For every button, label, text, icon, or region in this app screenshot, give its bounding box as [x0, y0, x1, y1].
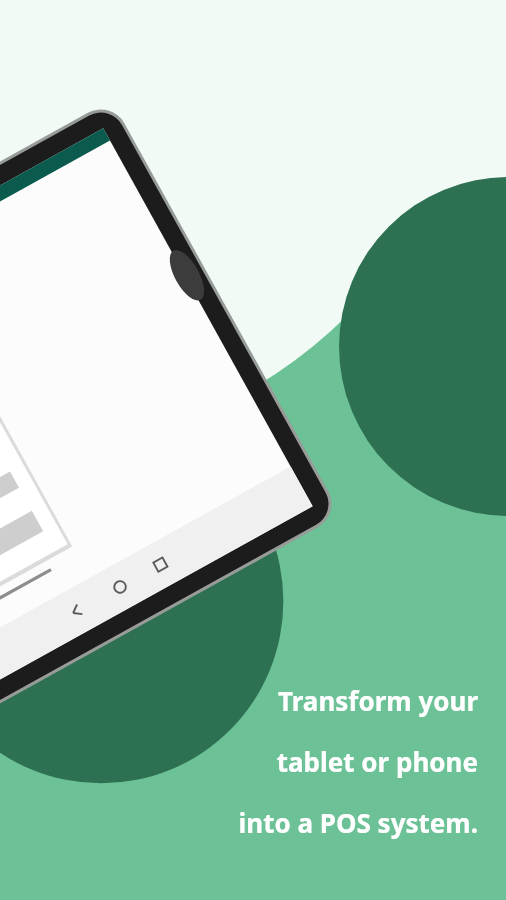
- staticText: tablet or phone: [276, 744, 478, 779]
- staticText: Transform your: [278, 683, 478, 718]
- button[interactable]: Transform your: [238, 683, 478, 840]
- staticText: into a POS system.: [238, 805, 478, 840]
